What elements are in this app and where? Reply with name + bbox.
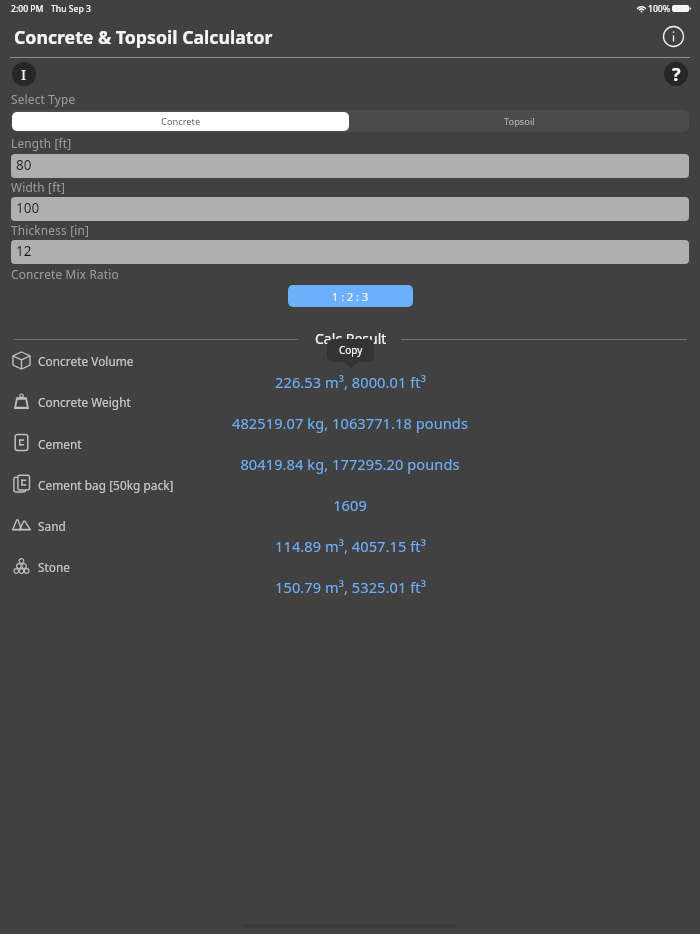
button[interactable]: Concrete	[12, 112, 349, 131]
button[interactable]: Information	[12, 62, 36, 86]
staticText: Length [ft]	[11, 135, 72, 151]
staticText: 226.53 m³, 8000.01 ft³	[275, 372, 426, 392]
staticText: Select Type	[11, 91, 76, 107]
staticText: Concrete Volume	[38, 353, 134, 369]
button[interactable]: Concrete Weight	[11, 391, 131, 412]
staticText: Stone	[38, 559, 71, 575]
staticText: 1 : 2 : 3	[332, 289, 369, 304]
staticText: Concrete Weight	[38, 394, 131, 410]
staticText: Sand	[38, 518, 66, 534]
staticText: 100%	[648, 3, 671, 15]
button[interactable]: Topsoil	[350, 110, 689, 132]
staticText: Cement	[38, 436, 82, 452]
staticText: 150.79 m³, 5325.01 ft³	[275, 577, 426, 597]
button[interactable]: Info	[661, 24, 686, 49]
staticText: Width [ft]	[11, 179, 65, 195]
staticText: Concrete & Topsoil Calculator	[14, 25, 273, 49]
staticText: 114.89 m³, 4057.15 ft³	[275, 536, 426, 556]
button[interactable]: Stone	[11, 556, 71, 577]
staticText: Copy	[339, 343, 363, 357]
button[interactable]: Help	[664, 62, 688, 86]
staticText: 1609	[333, 495, 367, 515]
staticText: 2:00 PM	[11, 3, 44, 15]
staticText: ?	[672, 62, 681, 86]
staticText: 100	[16, 199, 40, 217]
staticText: Concrete Mix Ratio	[11, 266, 119, 282]
button[interactable]: 80	[11, 154, 689, 178]
staticText: 80	[16, 156, 32, 174]
button[interactable]: 1 : 2 : 3	[288, 285, 413, 307]
button[interactable]: Sand	[11, 515, 66, 536]
staticText: Thickness [in]	[11, 222, 90, 238]
staticText: 80419.84 kg, 177295.20 pounds	[240, 454, 460, 474]
staticText: Cement bag [50kg pack]	[38, 477, 174, 493]
staticText: Thu Sep 3	[51, 3, 91, 15]
staticText: Topsoil	[504, 115, 535, 128]
button[interactable]: 12	[11, 240, 689, 264]
button[interactable]: 100	[11, 197, 689, 221]
staticText: Calc Result	[315, 329, 387, 348]
button[interactable]: Concrete Volume	[11, 350, 134, 371]
staticText: I	[21, 65, 27, 84]
button[interactable]: Cement bag [50kg pack]	[11, 474, 174, 495]
staticText: Concrete	[161, 115, 201, 128]
staticText: 12	[16, 242, 32, 260]
staticText: 482519.07 kg, 1063771.18 pounds	[232, 413, 468, 433]
button[interactable]: Cement	[11, 433, 82, 454]
